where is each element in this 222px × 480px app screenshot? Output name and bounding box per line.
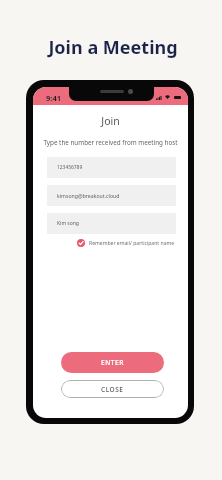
staticText: Join: [33, 114, 188, 128]
staticText: Join a Meeting: [2, 35, 222, 60]
staticText: CLOSE: [101, 385, 124, 394]
button[interactable]: 123456789: [47, 157, 176, 178]
button[interactable]: Remember email/ participant name: [77, 239, 175, 247]
staticText: ENTER: [101, 358, 124, 367]
staticText: 9:41: [46, 93, 61, 103]
button[interactable]: kimsong@breakout.cloud: [47, 185, 176, 206]
staticText: Kim song: [57, 220, 79, 227]
staticText: Remember email/ participant name: [89, 240, 175, 247]
button[interactable]: ENTER: [61, 352, 164, 373]
staticText: Type the number received from meeting ho…: [33, 138, 188, 147]
staticText: kimsong@breakout.cloud: [57, 192, 120, 199]
staticText: 123456789: [57, 164, 83, 171]
button[interactable]: CLOSE: [61, 380, 164, 398]
button[interactable]: Kim song: [47, 213, 176, 234]
